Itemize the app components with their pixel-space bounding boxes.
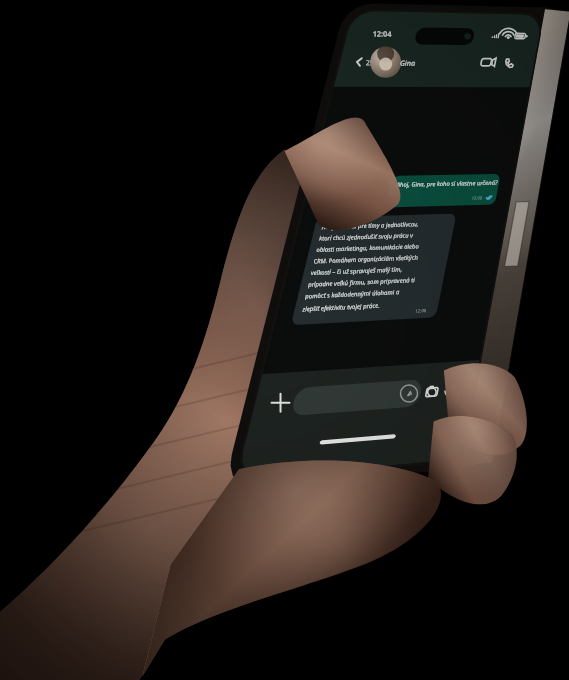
button[interactable]: Hand holding phone showing WhatsApp chat xyxy=(0,0,569,680)
